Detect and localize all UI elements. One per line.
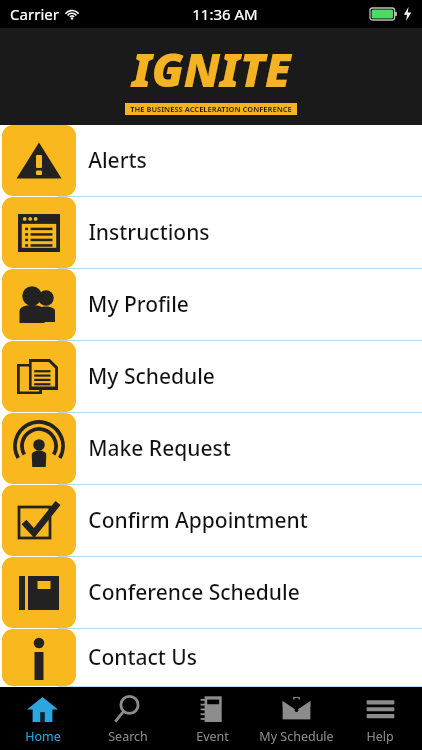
staticText: Conference Schedule (88, 578, 300, 607)
staticText: Search (108, 728, 148, 745)
button[interactable]: Contact Us (0, 629, 422, 687)
button[interactable]: Conference Schedule (0, 557, 422, 629)
staticText: Make Request (88, 434, 231, 463)
staticText: My Schedule (259, 728, 334, 745)
staticText: THE BUSINESS ACCELERATION CONFERENCE (130, 104, 292, 114)
button[interactable]: My Schedule (254, 687, 338, 750)
staticText: Help (366, 728, 394, 745)
button[interactable]: Search (85, 687, 170, 750)
staticText: Alerts (88, 146, 147, 175)
staticText: My Profile (88, 290, 189, 319)
button[interactable]: Home (0, 687, 85, 750)
button[interactable]: Make Request (0, 413, 422, 485)
staticText: Confirm Appointment (88, 506, 308, 535)
staticText: Contact Us (88, 643, 197, 672)
button[interactable]: Alerts (0, 125, 422, 197)
button[interactable]: Help (338, 687, 422, 750)
button[interactable]: My Profile (0, 269, 422, 341)
staticText: Event (196, 728, 229, 745)
button[interactable]: My Schedule (0, 341, 422, 413)
staticText: Instructions (88, 218, 210, 247)
staticText: My Schedule (88, 362, 215, 391)
staticText: 11:36 AM (192, 4, 258, 24)
button[interactable]: Event (170, 687, 254, 750)
button[interactable]: Instructions (0, 197, 422, 269)
staticText: Home (25, 728, 61, 745)
staticText: Carrier (10, 4, 59, 24)
staticText: IGNITE (132, 38, 291, 101)
button[interactable]: Confirm Appointment (0, 485, 422, 557)
